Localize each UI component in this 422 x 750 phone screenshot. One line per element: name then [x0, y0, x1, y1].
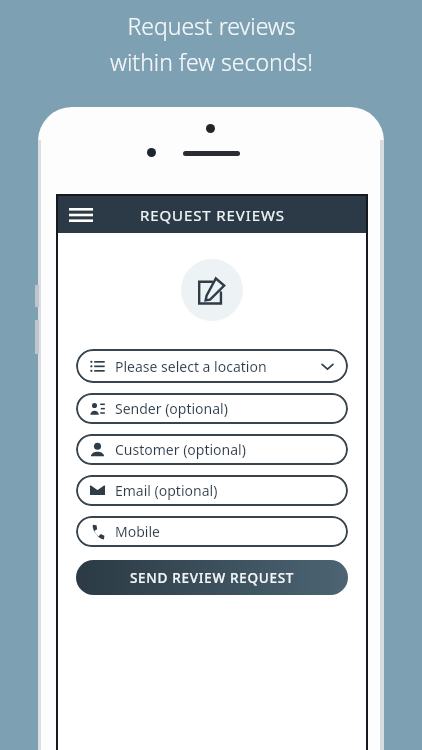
button[interactable]: Please select a location — [76, 349, 348, 383]
staticText: Email (optional) — [115, 481, 218, 500]
staticText: Please select a location — [115, 357, 267, 376]
staticText: Sender (optional) — [115, 399, 228, 418]
staticText: Mobile — [115, 522, 160, 541]
button[interactable]: Sender (optional) — [76, 393, 348, 424]
staticText: Customer (optional) — [115, 440, 246, 459]
staticText: REQUEST REVIEWS — [140, 205, 285, 225]
button[interactable]: Open navigation menu — [64, 198, 98, 232]
button[interactable]: Email (optional) — [76, 475, 348, 506]
staticText: SEND REVIEW REQUEST — [130, 569, 295, 587]
staticText: Request reviews — [127, 10, 296, 41]
button[interactable]: SEND REVIEW REQUEST — [76, 560, 348, 595]
staticText: within few seconds! — [110, 46, 313, 77]
button[interactable]: Customer (optional) — [76, 434, 348, 465]
button[interactable]: Mobile — [76, 516, 348, 547]
button[interactable]: Compose review request — [181, 259, 243, 321]
